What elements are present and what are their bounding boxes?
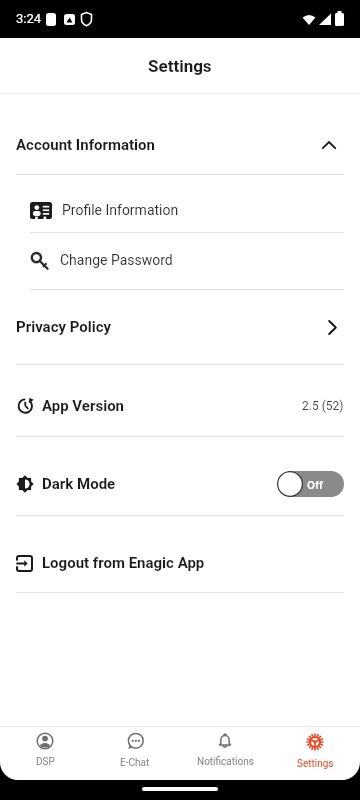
staticText: Logout from Enagic App bbox=[42, 554, 205, 572]
button[interactable]: Account Information bbox=[0, 121, 360, 169]
staticText: E-Chat bbox=[120, 757, 150, 769]
staticText: Notifications bbox=[197, 756, 254, 768]
staticText: Off bbox=[307, 478, 324, 491]
staticText: Settings bbox=[148, 56, 212, 76]
staticText: Profile Information bbox=[62, 202, 179, 218]
button[interactable]: App Version bbox=[0, 371, 360, 441]
button[interactable]: E-Chat bbox=[90, 727, 180, 780]
button[interactable]: Off bbox=[277, 471, 344, 497]
button[interactable]: Change Password bbox=[0, 233, 360, 286]
button[interactable]: Profile Information bbox=[0, 184, 360, 236]
staticText: 3:24 bbox=[16, 11, 42, 26]
staticText: Settings bbox=[297, 758, 334, 770]
staticText: Privacy Policy bbox=[16, 318, 112, 336]
staticText: Dark Mode bbox=[42, 475, 116, 493]
staticText: Account Information bbox=[16, 136, 155, 154]
button[interactable]: Privacy Policy bbox=[0, 290, 360, 364]
button[interactable]: Dark Mode bbox=[0, 449, 360, 519]
button[interactable]: DSP bbox=[0, 727, 90, 780]
button[interactable]: Logout from Enagic App bbox=[0, 528, 360, 598]
button[interactable]: Notifications bbox=[180, 727, 270, 780]
staticText: Change Password bbox=[60, 252, 173, 268]
staticText: DSP bbox=[36, 756, 55, 768]
staticText: 2.5 (52) bbox=[302, 399, 344, 413]
staticText: App Version bbox=[42, 397, 125, 415]
button[interactable]: Settings bbox=[270, 727, 360, 780]
